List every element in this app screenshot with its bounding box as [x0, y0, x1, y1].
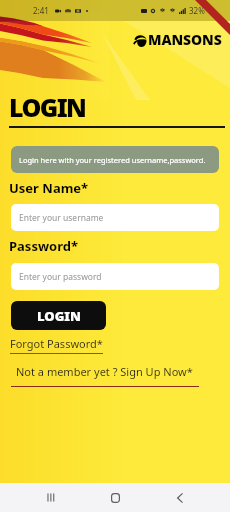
staticText: 32%: [189, 5, 205, 16]
button[interactable]: Enter your password: [11, 263, 219, 290]
button[interactable]: Not a member yet ? Sign Up Now*: [11, 364, 199, 387]
staticText: Enter your username: [19, 212, 104, 224]
staticText: Forgot Password*: [10, 336, 103, 351]
staticText: MANSONS: [148, 30, 222, 49]
staticText: User Name*: [9, 179, 89, 197]
button[interactable]: Forgot Password*: [10, 336, 103, 354]
button[interactable]: Back: [156, 483, 204, 512]
button[interactable]: Recent apps: [26, 483, 74, 512]
staticText: LOGIN: [9, 90, 86, 124]
button[interactable]: Home: [91, 483, 139, 512]
button[interactable]: LOGIN: [11, 301, 106, 330]
staticText: Enter your password: [19, 271, 102, 283]
staticText: 2:41: [33, 5, 49, 16]
staticText: LOGIN: [37, 307, 81, 325]
staticText: Login here with your registered username…: [19, 155, 206, 165]
button[interactable]: Enter your username: [11, 204, 219, 231]
staticText: Not a member yet ? Sign Up Now*: [16, 364, 193, 379]
staticText: Password*: [9, 237, 78, 255]
